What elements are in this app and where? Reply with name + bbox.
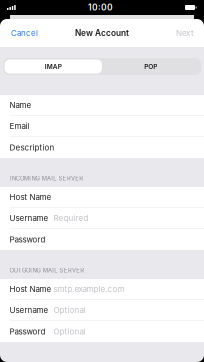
staticText: Password (9, 235, 45, 244)
staticText: Name (9, 100, 31, 110)
button[interactable]: Username (0, 300, 204, 321)
button[interactable]: Cancel (0, 19, 47, 47)
staticText: IMAP (45, 62, 62, 70)
staticText: Host Name (9, 192, 51, 202)
button[interactable]: Host Name (0, 187, 204, 208)
staticText: New Account (75, 28, 129, 38)
staticText: Email (9, 121, 29, 131)
staticText: 10:00 (88, 2, 113, 13)
button[interactable]: Next (167, 19, 204, 47)
button[interactable]: POP (102, 59, 199, 73)
staticText: Host Name (9, 284, 51, 294)
button[interactable]: Username (0, 208, 204, 229)
button[interactable]: Email (0, 116, 204, 137)
button[interactable]: Host Name (0, 279, 204, 300)
button[interactable]: Password (0, 321, 204, 342)
staticText: OUTGOING MAIL SERVER (9, 267, 84, 274)
staticText: Username (9, 213, 48, 223)
staticText: Next (176, 28, 194, 38)
staticText: POP (144, 62, 157, 70)
staticText: INCOMING MAIL SERVER (9, 175, 83, 182)
button[interactable]: IMAP (4, 59, 102, 73)
button[interactable]: Password (0, 229, 204, 250)
staticText: Required (53, 213, 88, 223)
staticText: smtp.example.com (53, 284, 124, 294)
button[interactable]: Description (0, 137, 204, 158)
staticText: Optional (53, 305, 85, 315)
staticText: Optional (53, 327, 85, 336)
button[interactable]: Name (0, 95, 204, 116)
staticText: Description (9, 143, 54, 152)
staticText: Cancel (11, 28, 38, 38)
staticText: Password (9, 327, 45, 336)
staticText: Username (9, 305, 48, 315)
